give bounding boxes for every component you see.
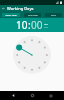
staticText: START TIME [5, 14, 17, 17]
staticText: 00 [31, 18, 43, 32]
button[interactable]: 10 [16, 18, 28, 32]
staticText: : [28, 18, 31, 32]
button[interactable]: Recent apps [46, 91, 55, 100]
button[interactable]: Back [9, 91, 18, 100]
staticText: Working Days [7, 6, 34, 11]
button[interactable]: DAYS [45, 13, 62, 17]
staticText: END TIME [28, 14, 38, 17]
button[interactable] [13, 36, 51, 74]
staticText: PM [44, 25, 48, 28]
button[interactable]: AM [44, 22, 48, 25]
button[interactable]: PM [44, 25, 48, 28]
staticText: DAYS [51, 14, 56, 17]
staticText: AM [44, 22, 48, 25]
staticText: 10 [16, 18, 28, 32]
button[interactable]: Home [28, 91, 37, 100]
button[interactable]: 00 [31, 18, 43, 32]
button[interactable]: START TIME [2, 13, 20, 17]
button[interactable]: END TIME [24, 13, 41, 17]
button[interactable]: Back [0, 5, 7, 12]
